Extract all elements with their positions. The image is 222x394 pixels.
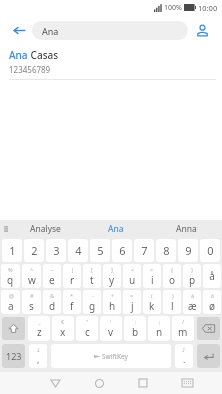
button[interactable]: _ <box>28 316 50 341</box>
staticText: Ana <box>42 25 59 37</box>
button[interactable]: & <box>43 290 61 314</box>
staticText: 2 <box>31 243 38 258</box>
staticText: b <box>132 325 139 339</box>
staticText: % <box>8 266 13 273</box>
button[interactable]: @ <box>1 290 20 314</box>
button[interactable]: { <box>163 264 181 288</box>
button[interactable]: ♪ <box>175 344 193 368</box>
staticText: r <box>70 273 75 287</box>
staticText: v <box>108 325 114 339</box>
button[interactable]: 123 <box>2 344 25 368</box>
button[interactable]: # <box>22 290 41 314</box>
staticText: e <box>49 273 55 287</box>
button[interactable]: Analyse <box>10 220 80 238</box>
staticText: 100% <box>164 3 182 13</box>
button[interactable]: | <box>63 264 81 288</box>
staticText: = <box>130 292 134 299</box>
button[interactable]: Home <box>77 372 121 394</box>
staticText: 10:00 <box>198 3 218 13</box>
button[interactable]: 3 <box>46 239 66 262</box>
button[interactable]: à <box>183 290 201 314</box>
staticText: : <box>135 318 137 325</box>
staticText: < <box>131 266 135 273</box>
staticText: { <box>171 266 174 273</box>
button[interactable]: / <box>172 316 194 341</box>
button[interactable]: 2 <box>24 239 44 262</box>
staticText: 123 <box>6 350 22 362</box>
button[interactable]: Ana <box>32 21 188 40</box>
button[interactable]: Back <box>34 372 77 394</box>
staticText: 9 <box>185 243 192 258</box>
staticText: h <box>109 299 116 313</box>
staticText: a <box>8 299 14 313</box>
button[interactable]: 4 <box>68 239 88 262</box>
staticText: s <box>29 299 34 313</box>
staticText: y <box>109 273 115 287</box>
staticText: ( <box>151 292 153 299</box>
button[interactable]: 9 <box>178 239 198 262</box>
staticText: à <box>191 292 195 299</box>
button[interactable]: 8 <box>156 239 176 262</box>
staticText: ; <box>159 318 161 325</box>
button[interactable]: * <box>63 290 81 314</box>
staticText: + <box>111 292 115 299</box>
button[interactable]: ò <box>203 290 221 314</box>
button[interactable]: " <box>76 316 98 341</box>
button[interactable]: 7 <box>134 239 154 262</box>
staticText: 5 <box>97 243 104 258</box>
button[interactable]: Space <box>51 344 171 368</box>
button[interactable]: 5 <box>90 239 110 262</box>
staticText: u <box>129 273 136 287</box>
button[interactable]: : <box>124 316 146 341</box>
button[interactable]: 0 <box>200 239 220 262</box>
button[interactable]: Recents <box>121 372 165 394</box>
button[interactable]: ) <box>163 290 181 314</box>
staticText: 6 <box>119 243 126 258</box>
button[interactable]: - <box>83 290 101 314</box>
staticText: ò <box>211 292 215 299</box>
button[interactable]: } <box>183 264 201 288</box>
button[interactable]: = <box>123 290 141 314</box>
staticText: d <box>49 299 56 313</box>
staticText: _ <box>38 318 41 325</box>
button[interactable]: [ <box>83 264 101 288</box>
button[interactable]: Back <box>6 17 32 43</box>
button[interactable]: ^ <box>22 264 41 288</box>
button[interactable]: € <box>52 316 74 341</box>
button[interactable]: Ana <box>80 220 151 238</box>
staticText: SwiftKey <box>102 352 128 361</box>
button[interactable]: ↓ <box>29 344 47 368</box>
button[interactable]: ' <box>100 316 122 341</box>
staticText: ' <box>110 318 112 325</box>
staticText: 8 <box>163 243 170 258</box>
staticText: 7 <box>141 243 148 258</box>
staticText: o <box>169 273 176 287</box>
button[interactable]: Shift <box>2 317 25 340</box>
staticText: x <box>60 325 66 339</box>
button[interactable]: 1 <box>2 239 22 262</box>
button[interactable]: 6 <box>112 239 132 262</box>
staticText: f <box>70 299 74 313</box>
button[interactable]: + <box>103 290 121 314</box>
button[interactable]: Enter <box>197 344 220 368</box>
button[interactable]: ; <box>148 316 170 341</box>
button[interactable]: Contacts <box>188 16 216 44</box>
button[interactable]: Ana <box>0 45 222 79</box>
button[interactable]: ( <box>143 290 161 314</box>
button[interactable]: ~ <box>43 264 61 288</box>
button[interactable]: ] <box>103 264 121 288</box>
button[interactable]: Anna <box>151 220 222 238</box>
staticText: i <box>151 273 154 287</box>
staticText: c <box>85 325 90 339</box>
button[interactable]: Backspace <box>197 317 220 340</box>
button[interactable]: % <box>1 264 20 288</box>
button[interactable]: å <box>203 264 221 288</box>
button[interactable]: Menu <box>0 220 10 238</box>
staticText: æ <box>188 299 197 313</box>
button[interactable]: < <box>123 264 141 288</box>
staticText: ] <box>111 266 113 273</box>
staticText: , <box>37 353 40 365</box>
button[interactable]: > <box>143 264 161 288</box>
button[interactable]: Hide keyboard <box>165 372 209 394</box>
staticText: 0 <box>207 243 214 258</box>
